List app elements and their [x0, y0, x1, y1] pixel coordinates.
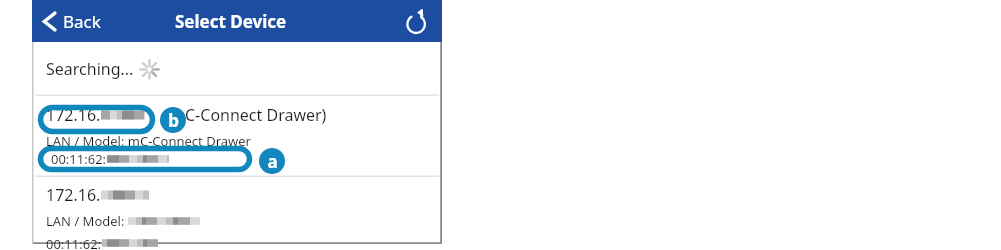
- staticText: 172.16.: [46, 184, 101, 206]
- staticText: 00:11:62:: [46, 157, 102, 175]
- staticText: Back: [63, 10, 101, 33]
- staticText: LAN / Model:: [46, 212, 128, 230]
- staticText: 00:11:62:: [46, 235, 102, 250]
- staticText: LAN / Model: mC-Connect Drawer: [46, 132, 251, 150]
- staticText: Searching...: [46, 58, 134, 80]
- button[interactable]: Back: [37, 4, 107, 39]
- staticText: a: [267, 150, 278, 173]
- staticText: C-Connect Drawer): [185, 104, 327, 126]
- staticText: b: [168, 109, 179, 132]
- staticText: 172.16.: [46, 104, 101, 126]
- button[interactable]: 172.16.: [32, 177, 442, 244]
- staticText: 00:11:62:: [51, 150, 107, 168]
- button[interactable]: Refresh: [403, 5, 431, 38]
- staticText: Select Device: [175, 10, 287, 33]
- button[interactable]: 172.16.: [32, 96, 442, 177]
